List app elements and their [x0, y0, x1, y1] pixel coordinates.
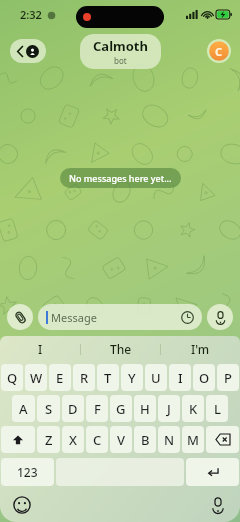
staticText: W	[30, 369, 43, 387]
staticText: O	[199, 369, 210, 387]
staticText: bot	[114, 55, 127, 66]
staticText: J	[167, 400, 171, 418]
button[interactable]: Profile	[207, 39, 231, 63]
staticText: G	[116, 400, 126, 418]
staticText: Calmoth	[93, 37, 148, 55]
staticText: T	[104, 369, 112, 387]
button[interactable]: A	[12, 395, 35, 422]
button[interactable]: G	[110, 395, 132, 422]
button[interactable]: V	[110, 426, 132, 453]
button[interactable]: O	[193, 364, 215, 391]
button[interactable]: Emoji	[13, 496, 31, 514]
button[interactable]: Z	[37, 426, 60, 453]
button[interactable]: T	[97, 364, 119, 391]
staticText: N	[164, 431, 175, 449]
staticText: R	[80, 369, 89, 387]
button[interactable]: Schedule	[181, 311, 194, 324]
staticText: L	[214, 400, 221, 418]
button[interactable]: C	[86, 426, 108, 453]
button[interactable]: 123	[1, 458, 54, 486]
staticText: A	[19, 400, 28, 418]
staticText: C	[215, 44, 223, 59]
button[interactable]: E	[49, 364, 71, 391]
staticText: B	[141, 431, 150, 449]
button[interactable]: I'm	[161, 336, 240, 362]
button[interactable]: The	[81, 336, 160, 362]
staticText: K	[189, 400, 198, 418]
button[interactable]: B	[134, 426, 156, 453]
button[interactable]: Shift	[1, 426, 35, 453]
staticText: X	[69, 431, 77, 449]
button[interactable]: U	[145, 364, 167, 391]
button[interactable]: I	[169, 364, 191, 391]
staticText: U	[151, 369, 161, 387]
button[interactable]: Message	[38, 304, 202, 330]
button[interactable]: D	[62, 395, 84, 422]
staticText: P	[224, 369, 232, 387]
button[interactable]: Y	[121, 364, 143, 391]
button[interactable]: F	[86, 395, 108, 422]
staticText: C	[93, 431, 102, 449]
staticText: Q	[7, 369, 18, 387]
staticText: D	[68, 400, 78, 418]
staticText: M	[187, 431, 199, 449]
staticText: Message	[51, 310, 181, 325]
button[interactable]: P	[217, 364, 239, 391]
button[interactable]: X	[62, 426, 84, 453]
button[interactable]: Back	[10, 39, 46, 63]
staticText: H	[140, 400, 150, 418]
staticText: V	[117, 431, 125, 449]
button[interactable]: Backspace	[206, 426, 239, 453]
staticText: 2:32	[20, 7, 42, 22]
staticText: S	[45, 400, 53, 418]
staticText: Y	[128, 369, 136, 387]
staticText: E	[56, 369, 64, 387]
staticText: F	[94, 400, 101, 418]
button[interactable]: H	[134, 395, 156, 422]
staticText: No messages here yet...	[69, 172, 172, 184]
button[interactable]: W	[25, 364, 47, 391]
staticText: I	[38, 341, 43, 357]
staticText: Z	[45, 431, 53, 449]
button[interactable]: M	[182, 426, 204, 453]
staticText: The	[110, 341, 132, 357]
button[interactable]: N	[158, 426, 180, 453]
button[interactable]: Voice message	[207, 304, 233, 330]
button[interactable]: J	[158, 395, 180, 422]
button[interactable]: Q	[1, 364, 23, 391]
button[interactable]: L	[206, 395, 228, 422]
button[interactable]: Enter	[186, 458, 239, 486]
button[interactable]: S	[37, 395, 60, 422]
button[interactable]: K	[182, 395, 204, 422]
button[interactable]: I	[0, 336, 80, 362]
staticText: I	[178, 369, 183, 387]
button[interactable]: Attach	[7, 304, 33, 330]
staticText: I'm	[191, 341, 210, 357]
button[interactable]: Voice input	[209, 496, 227, 514]
button[interactable]: Calmoth	[80, 34, 161, 69]
staticText: 123	[17, 464, 38, 480]
button[interactable]: R	[73, 364, 95, 391]
